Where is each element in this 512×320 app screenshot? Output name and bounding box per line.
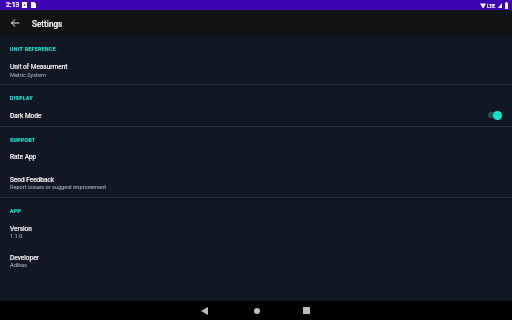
staticText: Send Feedback bbox=[10, 176, 55, 184]
button[interactable]: Unit of Measurment bbox=[0, 58, 512, 84]
staticText: SUPPORT bbox=[10, 137, 36, 143]
staticText: 2:13 bbox=[6, 1, 20, 9]
staticText: Unit of Measurment bbox=[10, 63, 68, 71]
button[interactable]: Back bbox=[195, 301, 214, 320]
staticText: UNIT REFERENCE bbox=[10, 46, 56, 52]
staticText: Metric System bbox=[10, 72, 46, 79]
staticText: 1.1.0 bbox=[10, 233, 23, 240]
button[interactable]: Version bbox=[0, 220, 512, 246]
button[interactable]: Send Feedback bbox=[0, 168, 512, 196]
button[interactable]: Home bbox=[247, 301, 266, 320]
button[interactable]: Rate App bbox=[0, 148, 512, 166]
staticText: LTE bbox=[487, 3, 496, 9]
button[interactable]: Dark Mode toggle bbox=[486, 108, 504, 120]
staticText: Adikas bbox=[10, 262, 27, 269]
staticText: DISPLAY bbox=[10, 95, 34, 101]
staticText: Settings bbox=[32, 19, 63, 29]
staticText: Version bbox=[10, 225, 32, 233]
button[interactable]: Recent apps bbox=[297, 301, 316, 320]
staticText: Developer bbox=[10, 254, 39, 262]
staticText: APP bbox=[10, 208, 22, 214]
staticText: Rate App bbox=[10, 153, 37, 161]
button[interactable]: Dark Mode bbox=[0, 106, 512, 126]
staticText: Report issues or suggest improvement bbox=[10, 184, 107, 191]
button[interactable]: Developer bbox=[0, 248, 512, 274]
button[interactable]: Back bbox=[6, 14, 23, 31]
staticText: Dark Mode bbox=[10, 112, 42, 120]
